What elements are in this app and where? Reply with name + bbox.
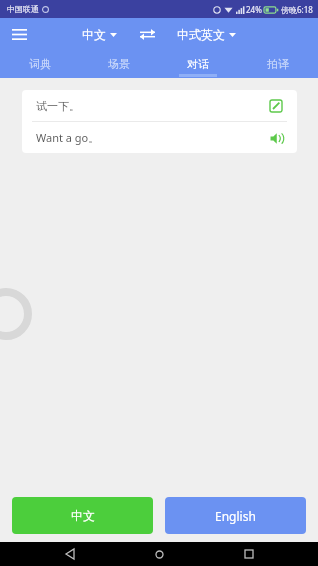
button[interactable]: 词典 xyxy=(0,50,79,78)
button[interactable]: 场景 xyxy=(79,50,158,78)
staticText: English xyxy=(215,508,256,524)
staticText: 试一下。 xyxy=(36,99,80,113)
staticText: 中文 xyxy=(71,508,95,523)
button[interactable]: Menu xyxy=(6,21,32,47)
staticText: 中式英文 xyxy=(177,27,225,42)
staticText: 中国联通 xyxy=(7,4,39,14)
staticText: 词典 xyxy=(29,57,51,71)
button[interactable]: 试一下。 xyxy=(22,90,297,121)
staticText: 对话 xyxy=(187,57,209,71)
button[interactable]: Play audio xyxy=(267,129,285,147)
staticText: 场景 xyxy=(108,57,130,71)
staticText: 拍译 xyxy=(267,57,289,71)
button[interactable]: English xyxy=(165,497,306,534)
button[interactable]: 拍译 xyxy=(238,50,318,78)
staticText: 傍晚6:18 xyxy=(281,4,313,15)
button[interactable]: 中文 xyxy=(78,24,121,45)
staticText: 24% xyxy=(246,4,262,15)
button[interactable]: Home xyxy=(139,542,179,566)
button[interactable]: 中文 xyxy=(12,497,153,534)
staticText: Want a go。 xyxy=(36,130,100,145)
button[interactable]: Edit xyxy=(267,97,285,115)
button[interactable]: Want a go。 xyxy=(22,122,297,153)
button[interactable]: Back xyxy=(50,542,90,566)
button[interactable]: Recent apps xyxy=(229,542,269,566)
staticText: 中文 xyxy=(82,27,106,42)
button[interactable]: 对话 xyxy=(158,50,238,78)
button[interactable]: Swap languages xyxy=(135,22,159,46)
button[interactable]: 中式英文 xyxy=(173,24,240,45)
